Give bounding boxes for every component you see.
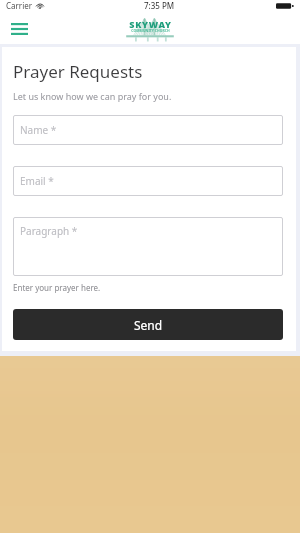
button[interactable]: Name * <box>13 115 283 145</box>
staticText: Send <box>134 317 163 333</box>
staticText: Email * <box>20 174 54 188</box>
button[interactable]: Open navigation menu <box>6 17 32 41</box>
button[interactable]: Send <box>13 309 283 340</box>
staticText: 7:35 PM <box>144 0 175 11</box>
staticText: COMMUNITY CHURCH <box>131 28 170 33</box>
button[interactable]: Skyway Community Church home <box>116 16 184 42</box>
staticText: Paragraph * <box>20 224 78 238</box>
staticText: Carrier <box>6 0 33 11</box>
staticText: Prayer Requests <box>13 60 143 83</box>
staticText: SKYWAY <box>129 18 172 30</box>
button[interactable]: Paragraph * <box>13 217 283 276</box>
staticText: Enter your prayer here. <box>13 282 101 293</box>
button[interactable]: Email * <box>13 166 283 196</box>
staticText: Name * <box>20 123 57 137</box>
staticText: Let us know how we can pray for you. <box>13 90 172 102</box>
